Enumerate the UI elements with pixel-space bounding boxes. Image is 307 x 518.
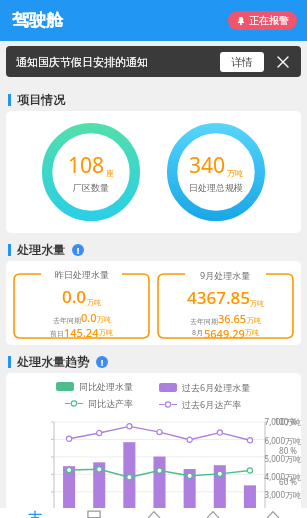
button[interactable]: 关闭 [273,52,293,72]
staticText: 详情 [231,55,253,69]
staticText: 9月处理水量 [200,269,251,281]
staticText: 万吨 [247,316,261,325]
button[interactable]: 首页 [10,508,60,518]
button[interactable]: 我的 [248,508,298,518]
staticText: 处理水量 [17,242,65,257]
staticText: 万吨 [87,298,101,307]
button[interactable]: 监控 [69,508,119,518]
staticText: 60 % [6,476,297,487]
button[interactable]: 说明 [72,244,84,256]
staticText: 万吨 [97,315,111,324]
staticText: 3,000万吨 [6,489,301,500]
staticText: 5,000万吨 [6,453,301,464]
staticText: 正在报警 [249,14,289,27]
staticText: ! [77,245,80,256]
staticText: 2,000万吨 [6,507,301,518]
staticText: 5649.29 [204,326,245,338]
staticText: 4,000万吨 [6,471,301,482]
staticText: 昨日处理水量 [55,269,109,280]
staticText: 108 [68,151,105,180]
staticText: 36.65 [218,311,247,326]
staticText: ! [101,357,104,368]
staticText: 日处理总规模 [189,182,243,193]
button[interactable]: 详情 [220,52,264,72]
staticText: 万吨 [99,328,113,337]
button[interactable]: 统计 [188,508,238,518]
staticText: 座 [106,168,114,178]
button[interactable]: 昨日处理水量 [14,268,149,338]
staticText: 过去6月达产率 [182,398,242,410]
staticText: 厂区数量 [73,182,109,193]
staticText: 通知国庆节假日安排的通知 [16,55,148,69]
staticText: 40 % [6,507,297,518]
staticText: 前日 [50,329,64,338]
button[interactable]: 正在报警 [228,11,297,30]
staticText: 处理水量趋势 [17,354,89,369]
staticText: 8月 [192,328,204,338]
staticText: 4367.85 [187,286,250,309]
button[interactable]: 9月处理水量 [158,268,293,338]
staticText: 万吨 [250,299,264,308]
staticText: 145.24 [64,325,99,338]
staticText: 驾驶舱 [12,10,63,31]
staticText: 万吨 [245,328,259,337]
staticText: 0.0 [62,285,87,308]
staticText: 6,000万吨 [6,435,301,446]
staticText: 7,000万吨 [6,416,301,427]
staticText: 万吨 [227,168,243,178]
button[interactable]: 报警 [129,508,179,518]
staticText: 0.0 [81,310,97,325]
staticText: 过去6月处理水量 [182,381,251,393]
staticText: 80 % [6,445,297,456]
button[interactable]: 说明 [96,356,108,368]
staticText: 去年同期 [53,316,81,325]
staticText: 同比达产率 [88,398,133,409]
staticText: 同比处理水量 [79,381,133,392]
staticText: 去年同期 [190,317,218,326]
staticText: 340 [189,151,226,180]
staticText: 项目情况 [17,92,65,107]
staticText: 100 % [6,416,297,427]
